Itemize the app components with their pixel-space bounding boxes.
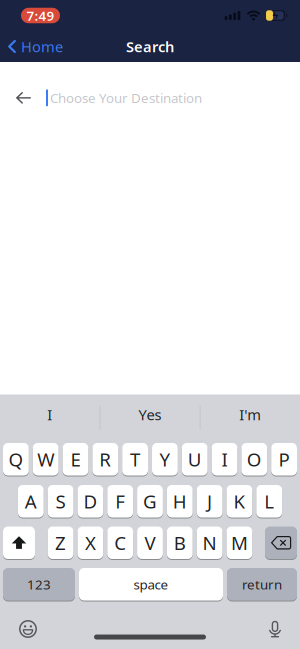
button[interactable]: T bbox=[122, 443, 148, 475]
button[interactable]: Y bbox=[152, 443, 178, 475]
button[interactable]: Dictation bbox=[267, 620, 283, 637]
staticText: W bbox=[37, 447, 54, 472]
staticText: A bbox=[25, 489, 37, 514]
button[interactable]: V bbox=[137, 526, 163, 559]
button[interactable]: Yes bbox=[100, 394, 200, 434]
staticText: E bbox=[70, 447, 80, 472]
staticText: T bbox=[130, 447, 140, 472]
button[interactable]: X bbox=[77, 526, 103, 559]
button[interactable]: L bbox=[256, 485, 282, 517]
staticText: X bbox=[85, 530, 96, 555]
button[interactable]: B bbox=[167, 526, 193, 559]
button[interactable]: G bbox=[137, 485, 163, 517]
button[interactable]: I bbox=[212, 443, 237, 475]
button[interactable]: Z bbox=[48, 526, 73, 559]
staticText: Search bbox=[126, 37, 174, 56]
staticText: Q bbox=[8, 447, 23, 472]
staticText: I'm bbox=[239, 405, 261, 424]
staticText: N bbox=[203, 530, 217, 555]
button[interactable]: Shift bbox=[3, 526, 35, 559]
staticText: V bbox=[144, 530, 155, 555]
button[interactable]: C bbox=[107, 526, 133, 559]
staticText: Yes bbox=[138, 405, 161, 424]
button[interactable]: F bbox=[107, 485, 133, 517]
button[interactable]: R bbox=[92, 443, 118, 475]
button[interactable]: I'm bbox=[200, 394, 300, 434]
staticText: P bbox=[279, 447, 290, 472]
button[interactable]: S bbox=[48, 485, 73, 517]
button[interactable]: H bbox=[167, 485, 193, 517]
staticText: U bbox=[188, 447, 202, 472]
staticText: B bbox=[174, 530, 186, 555]
button[interactable]: return bbox=[227, 568, 297, 600]
button[interactable]: W bbox=[33, 443, 59, 475]
staticText: R bbox=[99, 447, 111, 472]
button[interactable]: O bbox=[241, 443, 267, 475]
staticText: J bbox=[207, 489, 212, 514]
staticText: 7:49 bbox=[26, 7, 54, 24]
button[interactable]: Emoji bbox=[19, 620, 37, 638]
button[interactable]: J bbox=[197, 485, 222, 517]
staticText: D bbox=[83, 489, 97, 514]
button[interactable]: N bbox=[197, 526, 222, 559]
button[interactable]: Q bbox=[3, 443, 29, 475]
button[interactable]: Choose Your Destination bbox=[46, 89, 300, 107]
staticText: C bbox=[114, 530, 126, 555]
button[interactable]: A bbox=[18, 485, 44, 517]
staticText: S bbox=[56, 489, 66, 514]
staticText: space bbox=[133, 575, 168, 593]
staticText: O bbox=[247, 447, 262, 472]
staticText: M bbox=[231, 530, 248, 555]
button[interactable]: P bbox=[271, 443, 297, 475]
staticText: Choose Your Destination bbox=[50, 89, 202, 107]
staticText: return bbox=[242, 575, 282, 593]
staticText: Home bbox=[21, 37, 63, 56]
staticText: Z bbox=[55, 530, 66, 555]
staticText: 123 bbox=[27, 575, 51, 593]
staticText: L bbox=[264, 489, 274, 514]
button[interactable]: space bbox=[79, 568, 223, 600]
staticText: K bbox=[233, 489, 245, 514]
button[interactable]: 123 bbox=[3, 568, 75, 600]
button[interactable]: M bbox=[226, 526, 252, 559]
button[interactable]: Back bbox=[0, 92, 31, 103]
button[interactable]: E bbox=[63, 443, 88, 475]
staticText: Y bbox=[159, 447, 170, 472]
staticText: G bbox=[143, 489, 157, 514]
staticText: H bbox=[173, 489, 187, 514]
button[interactable]: D bbox=[77, 485, 103, 517]
button[interactable]: K bbox=[226, 485, 252, 517]
button[interactable]: U bbox=[182, 443, 208, 475]
button[interactable]: Delete bbox=[265, 526, 297, 559]
button[interactable]: I bbox=[0, 394, 99, 434]
staticText: F bbox=[115, 489, 125, 514]
staticText: I bbox=[47, 405, 52, 424]
button[interactable]: Back to Home bbox=[0, 37, 63, 56]
staticText: I bbox=[221, 447, 227, 472]
